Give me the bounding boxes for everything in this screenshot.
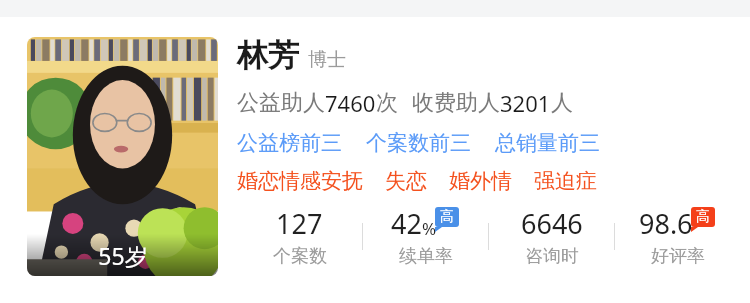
button[interactable]: 婚恋情感安抚 [237, 168, 363, 194]
staticText: 个案数前三 [366, 130, 471, 156]
button[interactable]: 公益榜前三 [237, 130, 342, 156]
staticText: 续单率 [399, 245, 453, 268]
staticText: 咨询时 [525, 245, 579, 268]
staticText: 公益榜前三 [237, 130, 342, 156]
button[interactable]: 强迫症 [534, 168, 597, 194]
staticText: 127 [276, 205, 323, 242]
staticText: 3201 [500, 88, 551, 118]
staticText: 婚恋情感安抚 [237, 168, 363, 194]
staticText: 55岁 [98, 240, 148, 271]
button[interactable]: 总销量前三 [495, 130, 600, 156]
staticText: 次 [376, 89, 398, 117]
button[interactable]: 失恋 [385, 168, 427, 194]
staticText: 强迫症 [534, 168, 597, 194]
staticText: 98.6 [639, 205, 693, 242]
button[interactable]: 127 [237, 205, 362, 268]
staticText: 收费助人 [412, 89, 500, 117]
staticText: 6646 [521, 205, 583, 242]
button[interactable]: 42 [363, 205, 488, 268]
staticText: 好评率 [651, 245, 705, 268]
button[interactable]: 婚外情 [449, 168, 512, 194]
staticText: 博士 [308, 48, 346, 72]
staticText: % [422, 217, 437, 240]
staticText: 公益助人 [237, 89, 325, 117]
button[interactable]: 98.6 [615, 205, 740, 268]
staticText: 高 [696, 208, 710, 226]
staticText: 个案数 [273, 245, 327, 268]
staticText: 高 [440, 208, 454, 226]
button[interactable]: 个案数前三 [366, 130, 471, 156]
staticText: 总销量前三 [495, 130, 600, 156]
button[interactable]: 6646 [489, 205, 614, 268]
staticText: 林芳 [237, 36, 299, 75]
staticText: 婚外情 [449, 168, 512, 194]
staticText: 失恋 [385, 168, 427, 194]
staticText: 42 [391, 205, 422, 242]
button[interactable]: 55岁 [27, 37, 218, 276]
staticText: 人 [551, 89, 573, 117]
staticText: 7460 [325, 88, 376, 118]
